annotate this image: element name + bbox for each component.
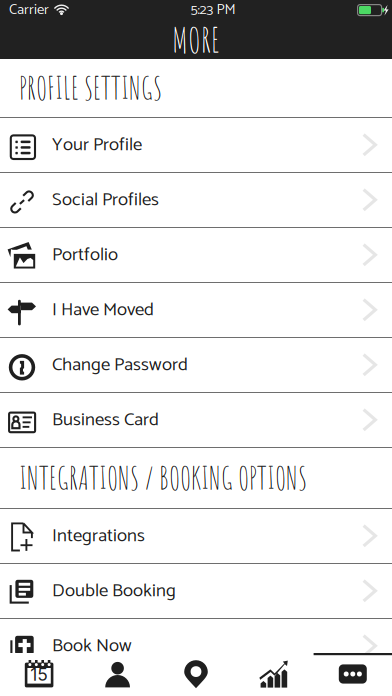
button[interactable]: Portfolio — [0, 228, 392, 282]
button[interactable]: Profile — [78, 653, 157, 696]
staticText: INTEGRATIONS / BOOKING OPTIONS — [19, 459, 307, 497]
button[interactable]: Stats — [235, 653, 314, 696]
button[interactable]: Integrations — [0, 509, 392, 563]
staticText: Integrations — [52, 521, 145, 551]
button[interactable]: Book Now — [0, 619, 392, 673]
staticText: PROFILE SETTINGS — [19, 69, 162, 107]
button[interactable]: Social Profiles — [0, 173, 392, 227]
button[interactable]: Business Card — [0, 393, 392, 447]
staticText: 5:23 PM — [190, 0, 235, 22]
staticText: 15 — [30, 664, 48, 685]
staticText: Book Now — [52, 631, 132, 661]
staticText: Double Booking — [52, 576, 176, 606]
staticText: Carrier — [9, 0, 49, 22]
staticText: I Have Moved — [52, 295, 154, 325]
staticText: Portfolio — [52, 240, 118, 270]
button[interactable]: Nearby — [157, 653, 235, 696]
staticText: Business Card — [52, 405, 159, 435]
button[interactable]: Change Password — [0, 338, 392, 392]
staticText: MORE — [172, 18, 220, 61]
staticText: Your Profile — [52, 130, 142, 160]
button[interactable]: I Have Moved — [0, 283, 392, 337]
button[interactable]: Calendar — [0, 653, 78, 696]
button[interactable]: Double Booking — [0, 564, 392, 618]
staticText: Change Password — [52, 350, 188, 380]
button[interactable]: Your Profile — [0, 118, 392, 172]
staticText: Social Profiles — [52, 185, 159, 215]
button[interactable]: More — [314, 653, 392, 696]
